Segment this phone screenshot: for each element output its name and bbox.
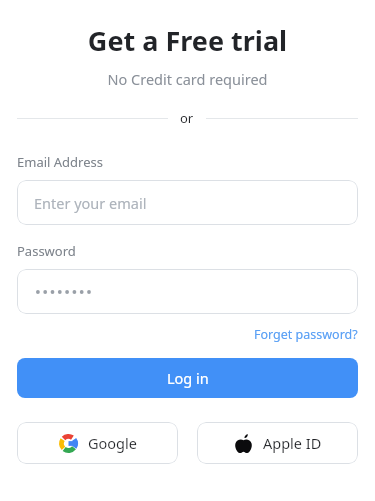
staticText: Get a Free trial	[0, 22, 375, 59]
button[interactable]: Log in	[17, 358, 358, 398]
staticText: Apple ID	[263, 433, 322, 453]
staticText: Email Address	[17, 153, 103, 171]
staticText: or	[180, 109, 194, 127]
staticText: Log in	[167, 368, 209, 388]
button[interactable]	[17, 269, 358, 314]
button[interactable]: Google	[17, 422, 178, 464]
staticText: Enter your email	[34, 193, 147, 213]
button[interactable]: Apple ID	[197, 422, 358, 464]
button[interactable]: Enter your email	[17, 180, 358, 225]
staticText: No Credit card required	[0, 69, 375, 89]
staticText: Password	[17, 242, 76, 260]
staticText: Google	[88, 433, 137, 453]
button[interactable]: Forget password?	[254, 326, 358, 343]
